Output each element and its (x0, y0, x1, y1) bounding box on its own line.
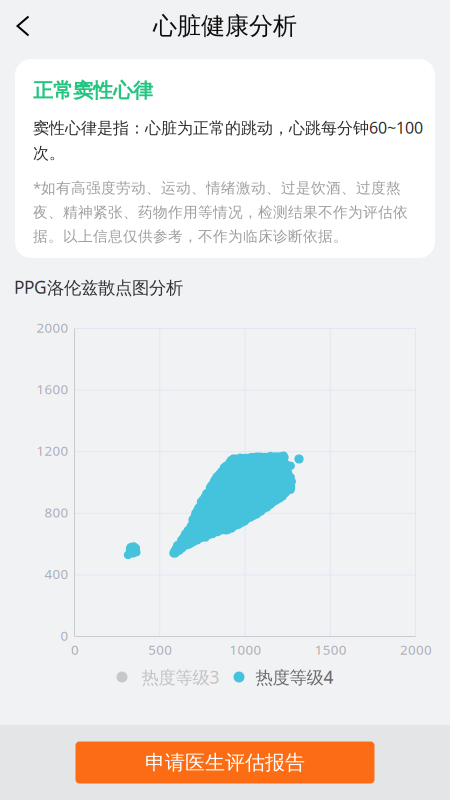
staticText: 1600 (36, 380, 68, 398)
staticText: 0 (71, 641, 79, 658)
staticText: 热度等级3 (141, 665, 219, 688)
staticText: 500 (148, 641, 172, 658)
staticText: 0 (60, 627, 68, 644)
staticText: 1000 (229, 641, 261, 658)
staticText: 正常窦性心律 (33, 78, 153, 103)
staticText: 800 (44, 503, 68, 521)
staticText: 2000 (400, 641, 432, 658)
staticText: 1200 (36, 442, 68, 459)
staticText: 1500 (315, 641, 347, 658)
staticText: 热度等级4 (255, 665, 333, 688)
staticText: 窦性心律是指：心脏为正常的跳动，心跳每分钟60~100次。 (33, 117, 423, 163)
staticText: 2000 (36, 319, 68, 336)
staticText: PPG洛伦兹散点图分析 (14, 275, 183, 298)
staticText: 心脏健康分析 (153, 11, 297, 41)
button[interactable]: 申请医生评估报告 (75, 741, 374, 783)
staticText: *如有高强度劳动、运动、情绪激动、过是饮酒、过度熬夜、精神紧张、药物作用等情况，… (33, 178, 408, 245)
staticText: 申请医生评估报告 (145, 750, 305, 775)
staticText: 400 (44, 565, 68, 583)
button[interactable]: Back (0, 3, 46, 49)
